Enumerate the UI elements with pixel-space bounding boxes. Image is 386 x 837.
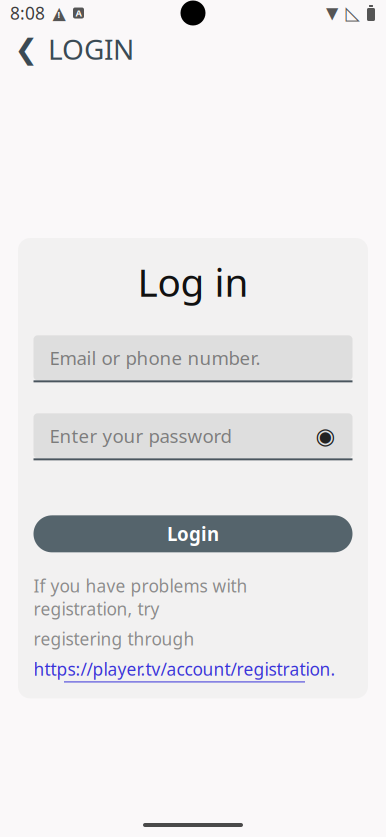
staticText: ▲ [52, 3, 65, 23]
staticText: registering through [33, 627, 194, 650]
staticText: ❮ [14, 33, 37, 65]
staticText: ▼ [326, 4, 338, 22]
staticText: https://player.tv/account/registration. [33, 657, 335, 680]
staticText: Email or phone number. [49, 345, 260, 370]
staticText: A [75, 7, 81, 19]
button[interactable]: Show password [310, 421, 340, 451]
staticText: ! [57, 8, 60, 21]
staticText: Log in [137, 256, 248, 307]
staticText: Login [167, 521, 219, 546]
staticText: ◉ [315, 423, 335, 449]
staticText: ◺ [345, 2, 359, 24]
button[interactable]: Back [4, 27, 48, 71]
button[interactable]: Login [33, 515, 352, 552]
staticText: If you have problems with registration, … [33, 574, 247, 620]
button[interactable]: https://player.tv/account/registration. [33, 657, 335, 682]
staticText: LOGIN [48, 30, 134, 68]
staticText: Enter your password [49, 423, 231, 448]
staticText: 8:08 [10, 1, 45, 24]
